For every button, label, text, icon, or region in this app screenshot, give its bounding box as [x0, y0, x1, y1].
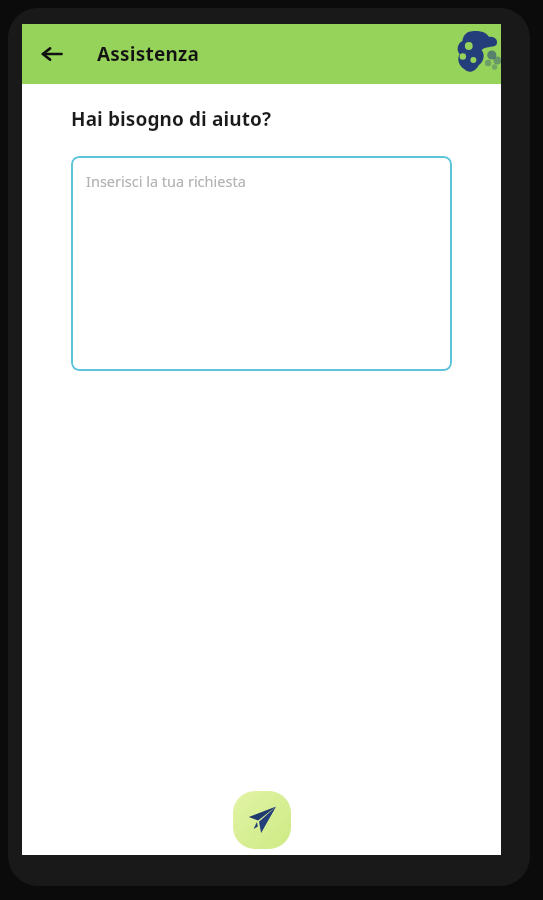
staticText: Hai bisogno di aiuto? [71, 106, 272, 132]
button[interactable]: Send [233, 791, 291, 849]
other: Logo [455, 29, 501, 79]
button[interactable]: Back [28, 30, 76, 78]
button[interactable]: Inserisci la tua richiesta [71, 156, 452, 371]
staticText: Inserisci la tua richiesta [86, 171, 246, 191]
staticText: Assistenza [97, 41, 200, 67]
